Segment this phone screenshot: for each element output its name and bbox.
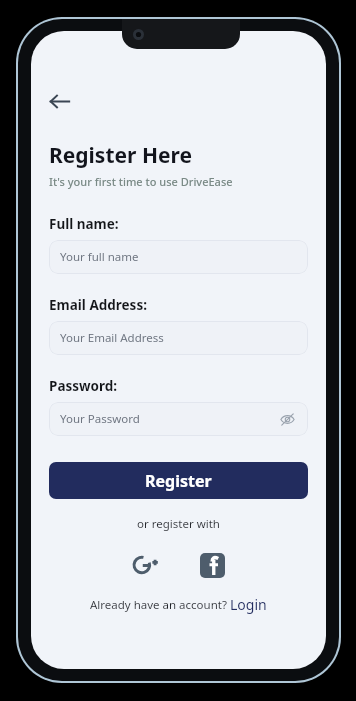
- staticText: Register Here: [49, 141, 193, 170]
- staticText: Your full name: [60, 249, 139, 265]
- staticText: It's your first time to use DriveEase: [49, 174, 233, 189]
- button[interactable]: Your Password: [49, 402, 308, 436]
- button[interactable]: Your full name: [49, 240, 308, 274]
- button[interactable]: Register with Facebook: [190, 543, 234, 587]
- staticText: Register: [145, 470, 212, 492]
- staticText: Your Email Address: [60, 330, 164, 346]
- staticText: Already have an account?: [90, 597, 230, 613]
- button[interactable]: Show password: [277, 409, 297, 429]
- button[interactable]: Register: [49, 462, 308, 499]
- button[interactable]: Already have an account?: [49, 595, 308, 614]
- button[interactable]: Back: [37, 79, 81, 123]
- staticText: Full name:: [49, 215, 119, 233]
- staticText: Password:: [49, 377, 118, 395]
- staticText: Your Password: [60, 411, 140, 427]
- staticText: or register with: [137, 516, 220, 532]
- staticText: Email Address:: [49, 296, 147, 314]
- button[interactable]: Your Email Address: [49, 321, 308, 355]
- button[interactable]: Register with Google: [124, 543, 168, 587]
- staticText: Login: [230, 595, 267, 614]
